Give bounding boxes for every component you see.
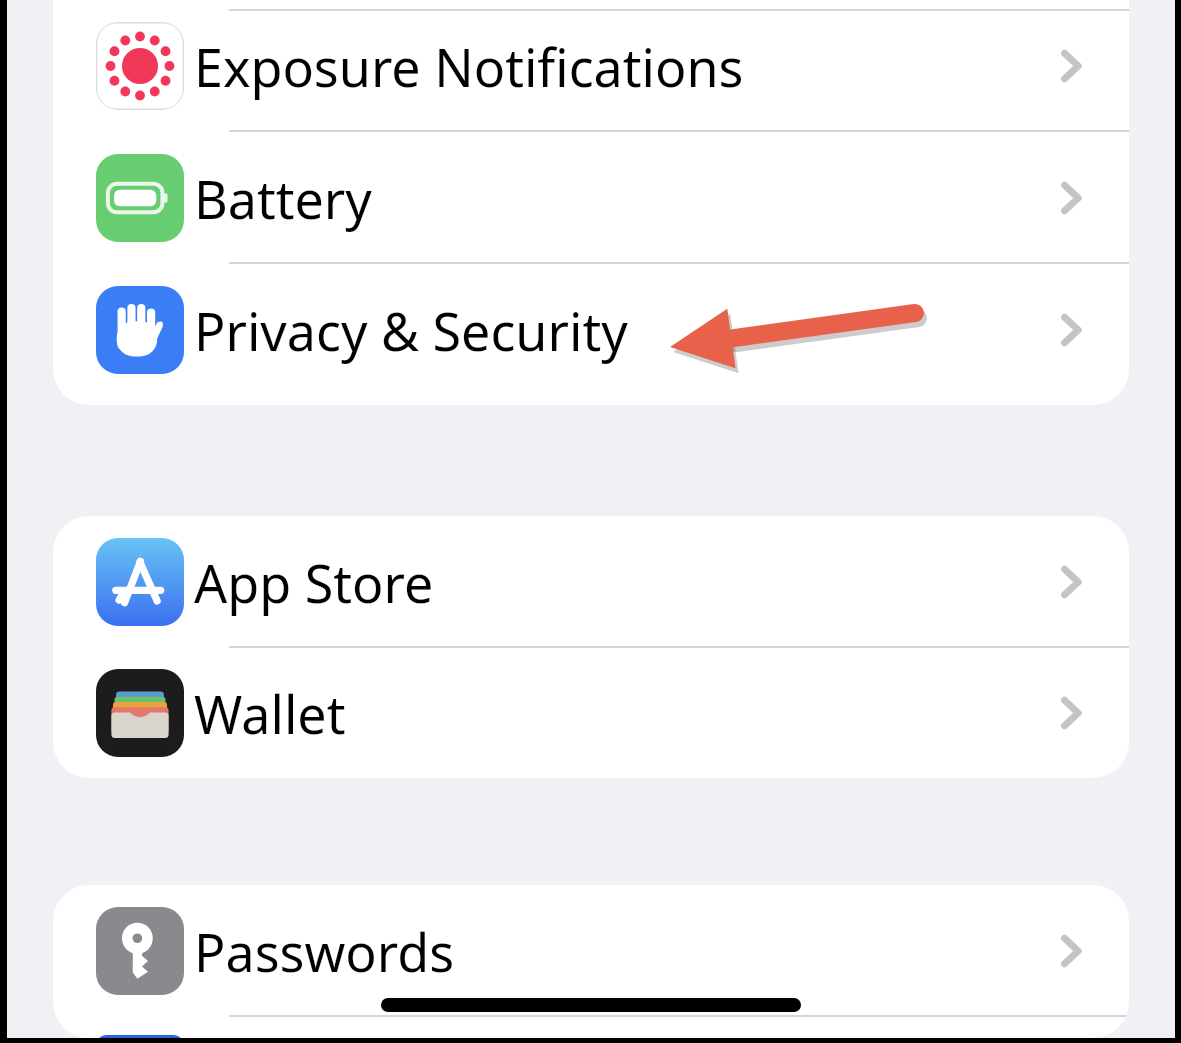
- staticText: App Store: [194, 547, 1089, 618]
- button[interactable]: Wallet: [53, 648, 1129, 778]
- staticText: Passwords: [194, 916, 1089, 987]
- button[interactable]: App Store: [53, 516, 1129, 648]
- staticText: Privacy & Security: [194, 295, 1089, 366]
- staticText: Wallet: [194, 678, 1089, 749]
- button[interactable]: Passwords: [53, 885, 1129, 1017]
- button[interactable]: Exposure Notifications: [53, 0, 1129, 132]
- staticText: Battery: [194, 163, 1089, 234]
- button[interactable]: Privacy & Security: [53, 264, 1129, 396]
- staticText: Exposure Notifications: [194, 31, 1089, 102]
- button[interactable]: Battery: [53, 132, 1129, 264]
